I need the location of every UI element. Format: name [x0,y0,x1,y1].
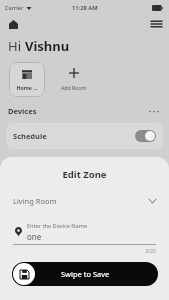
staticText: Hi [8,37,25,55]
staticText: one [27,231,42,242]
staticText: 11:28 AM [72,4,98,12]
staticText: Carrier [5,4,24,11]
button[interactable]: Add Room [55,62,93,91]
staticText: Enter the Device Name [27,222,88,230]
staticText: Devices [8,106,37,116]
staticText: Schedule [13,131,47,141]
staticText: Home ... [9,84,45,91]
staticText: Living Room [13,196,57,206]
button[interactable]: Save [13,263,35,285]
button[interactable]: More options [147,106,161,116]
staticText: Vishnu [25,37,70,55]
button[interactable]: Home ... [9,62,45,97]
staticText: Swipe to Save [61,269,110,279]
button[interactable]: Schedule [6,123,163,149]
button[interactable]: Menu [149,18,163,30]
staticText: 3/20 [13,247,156,254]
staticText: Edit Zone [0,168,169,181]
button[interactable] [135,130,156,142]
button[interactable]: Swipe to Save [12,262,158,286]
button[interactable]: Home [7,18,19,30]
staticText: Add Room [61,84,87,91]
button[interactable]: Living Room [13,194,156,208]
